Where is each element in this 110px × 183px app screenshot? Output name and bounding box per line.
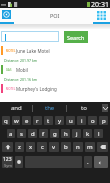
button[interactable]: Shift <box>2 142 13 152</box>
staticText: i <box>81 117 83 125</box>
button[interactable]: h <box>61 129 70 138</box>
button[interactable]: g <box>50 129 59 138</box>
button[interactable]: Enter <box>94 156 108 168</box>
staticText: r <box>36 117 39 125</box>
staticText: a <box>9 130 13 138</box>
staticText: k <box>86 130 90 138</box>
button[interactable]: e <box>22 116 31 125</box>
staticText: GAS <box>6 68 12 72</box>
button[interactable] <box>2 32 58 41</box>
button[interactable]: More suggestions <box>102 104 108 112</box>
button[interactable]: j <box>72 129 81 138</box>
staticText: w <box>14 117 19 125</box>
button[interactable]: MOTEL <box>0 84 110 93</box>
button[interactable]: s <box>17 129 26 138</box>
staticText: n <box>76 143 80 151</box>
button[interactable]: k <box>83 129 92 138</box>
staticText: j <box>76 130 78 138</box>
staticText: s <box>20 130 23 138</box>
staticText: c <box>41 143 44 151</box>
button[interactable]: Navigate up <box>0 8 14 22</box>
button[interactable]: m <box>85 142 95 152</box>
button[interactable]: f <box>39 129 48 138</box>
staticText: g <box>53 130 57 138</box>
button[interactable]: n <box>73 142 83 152</box>
staticText: . <box>87 158 89 166</box>
staticText: x <box>29 143 33 151</box>
button[interactable]: b <box>61 142 71 152</box>
staticText: Murphey's Lodging <box>16 86 57 92</box>
staticText: e <box>25 117 29 125</box>
button[interactable]: GAS <box>0 65 110 84</box>
staticText: h <box>64 130 68 138</box>
button[interactable]: and <box>0 102 32 114</box>
button[interactable]: Settings <box>15 156 23 168</box>
button[interactable]: z <box>15 142 24 152</box>
button[interactable]: r <box>33 116 42 125</box>
staticText: o <box>91 117 95 125</box>
staticText: v <box>52 143 56 151</box>
staticText: to <box>81 104 87 112</box>
button[interactable]: . <box>84 156 92 168</box>
staticText: Search <box>67 34 85 41</box>
button[interactable]: c <box>37 142 47 152</box>
button[interactable]: p <box>99 116 108 125</box>
staticText: 20:31 <box>91 0 109 8</box>
staticText: Distance: 201.97 km <box>4 58 38 63</box>
button[interactable]: i <box>77 116 86 125</box>
staticText: the <box>45 104 55 112</box>
button[interactable]: to <box>67 102 100 114</box>
button[interactable]: Grid view <box>93 8 110 22</box>
button[interactable]: a <box>7 129 15 138</box>
button[interactable]: q <box>2 116 10 125</box>
button[interactable]: v <box>49 142 59 152</box>
button[interactable]: MOTEL <box>0 46 110 65</box>
button[interactable]: x <box>26 142 35 152</box>
staticText: m <box>87 143 93 151</box>
staticText: b <box>64 143 68 151</box>
button[interactable]: Backspace <box>97 142 108 152</box>
staticText: u <box>69 117 73 125</box>
button[interactable]: Search <box>64 31 88 43</box>
button[interactable]: u <box>66 116 75 125</box>
button[interactable]: 123 <box>2 156 13 168</box>
staticText: y <box>58 117 62 125</box>
staticText: p <box>102 117 106 125</box>
staticText: Sym <box>4 163 12 168</box>
button[interactable]: w <box>12 116 20 125</box>
staticText: t <box>47 117 50 125</box>
button[interactable]: y <box>55 116 64 125</box>
staticText: MOTEL <box>6 87 16 91</box>
button[interactable]: d <box>28 129 37 138</box>
staticText: June Lake Motel <box>16 48 50 54</box>
button[interactable]: o <box>88 116 97 125</box>
button[interactable]: t <box>44 116 53 125</box>
staticText: 123 <box>3 156 12 163</box>
staticText: f <box>42 130 45 138</box>
staticText: POI <box>50 12 60 19</box>
button[interactable]: l <box>94 129 103 138</box>
button[interactable]: the <box>33 102 66 114</box>
staticText: q <box>4 117 8 125</box>
staticText: z <box>18 143 21 151</box>
staticText: d <box>31 130 35 138</box>
staticText: Distance: 201.16 km <box>4 77 38 82</box>
staticText: MOTEL <box>6 49 16 53</box>
staticText: Mobil <box>16 67 28 73</box>
staticText: l <box>98 130 100 138</box>
staticText: and <box>11 104 22 112</box>
